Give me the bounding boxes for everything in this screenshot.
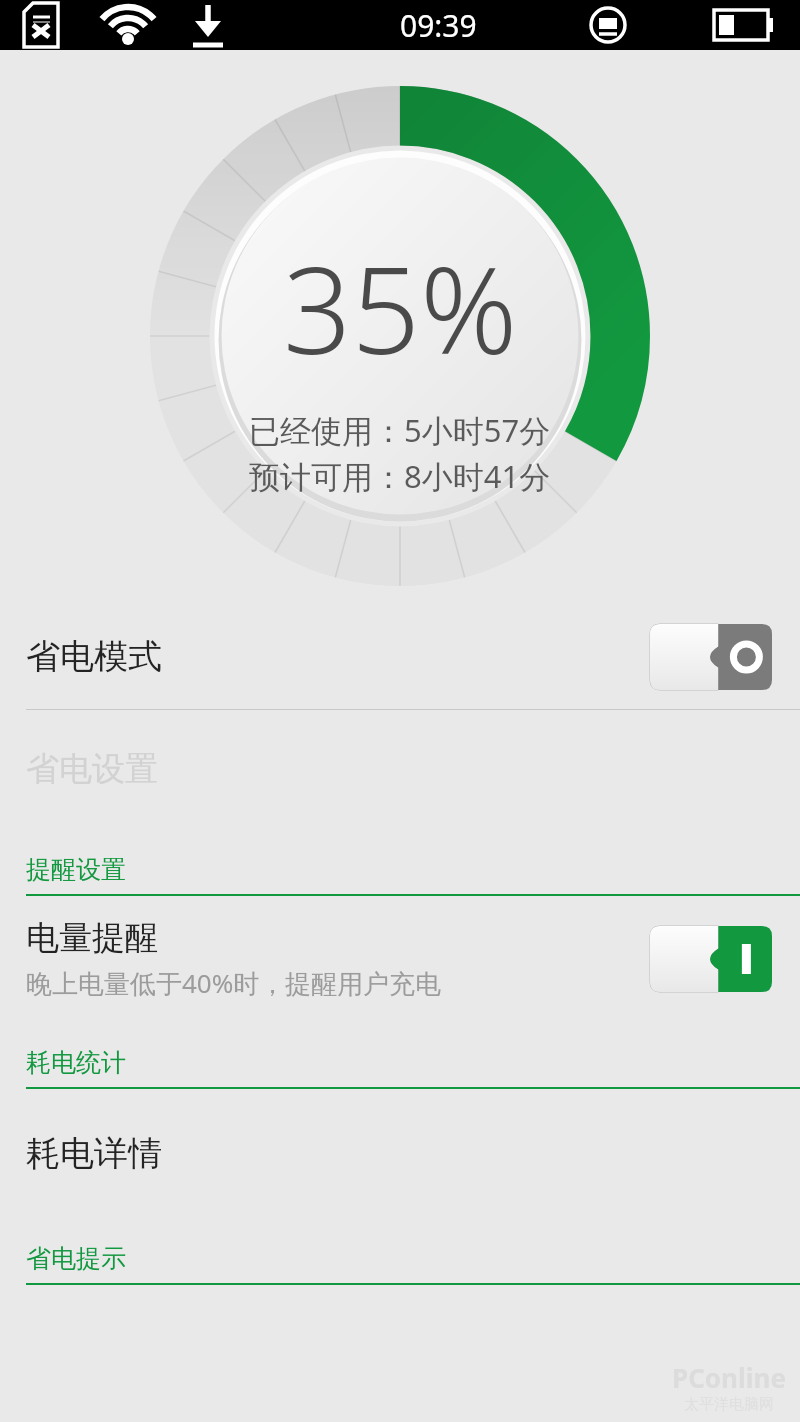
button[interactable]: 电量提醒 [0, 896, 800, 1021]
staticText: 耗电统计 [26, 1047, 126, 1078]
button[interactable]: 耗电详情 [0, 1089, 800, 1217]
button[interactable]: 省电模式 [0, 604, 800, 709]
staticText: 预计可用：8小时41分 [249, 455, 551, 497]
staticText: 35% [283, 226, 518, 389]
staticText: 耗电详情 [26, 1132, 162, 1175]
staticText: 省电提示 [26, 1243, 126, 1274]
staticText: 省电设置 [26, 748, 158, 790]
staticText: 省电模式 [26, 635, 162, 678]
staticText: PConline [672, 1360, 786, 1395]
staticText: 已经使用：5小时57分 [249, 409, 551, 451]
staticText: 09:39 [400, 5, 477, 46]
staticText: 电量提醒 [26, 917, 158, 959]
staticText: 提醒设置 [26, 854, 126, 885]
button[interactable]: Toggle on [650, 926, 772, 992]
staticText: 晚上电量低于40%时，提醒用户充电 [26, 965, 442, 1001]
staticText: 太平洋电脑网 [684, 1395, 774, 1414]
button[interactable]: Toggle off [650, 624, 772, 690]
